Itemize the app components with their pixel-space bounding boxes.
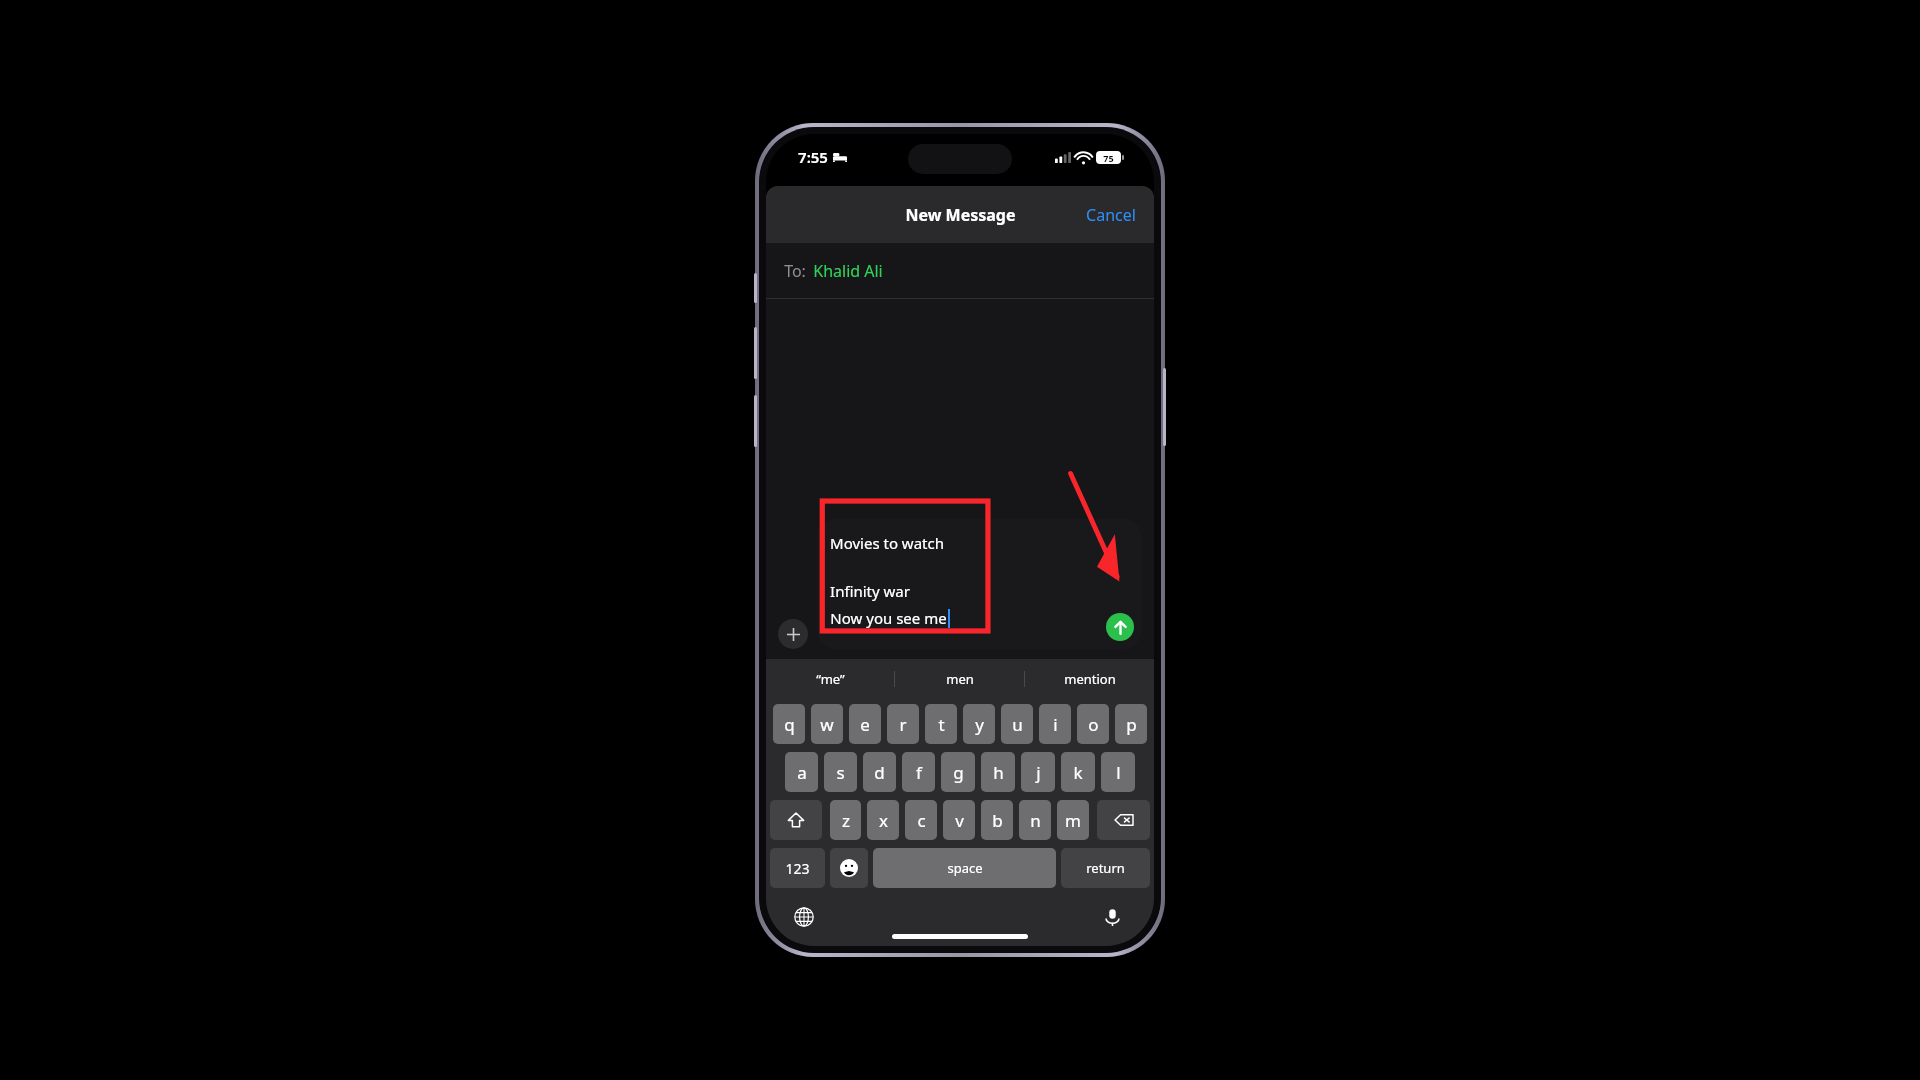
button[interactable]: mention [1025,659,1154,699]
button[interactable]: Dictate [1096,901,1128,933]
staticText: s [836,761,845,784]
staticText: “me” [816,670,845,688]
button[interactable]: u [1001,704,1033,744]
staticText: z [842,809,850,832]
staticText: m [1065,809,1081,832]
staticText: e [860,713,870,736]
button[interactable]: j [1021,752,1055,792]
button[interactable]: “me” [766,659,894,699]
staticText: i [1053,713,1058,736]
staticText: c [917,809,926,832]
button[interactable]: h [981,752,1015,792]
staticText: w [820,713,834,736]
staticText: g [953,761,964,784]
staticText: k [1073,761,1083,784]
staticText: a [797,761,807,784]
button[interactable]: i [1039,704,1071,744]
staticText: Khalid Ali [813,260,883,282]
button[interactable]: return [1061,848,1150,888]
staticText: x [879,809,888,832]
staticText: p [1126,713,1137,736]
button[interactable]: n [1019,800,1051,840]
staticText: 123 [785,859,810,878]
staticText: o [1088,713,1099,736]
staticText: l [1116,761,1121,784]
staticText: f [916,761,922,784]
staticText: b [992,809,1003,832]
button[interactable]: b [981,800,1013,840]
button[interactable]: w [811,704,843,744]
button[interactable]: y [963,704,995,744]
staticText: h [993,761,1004,784]
staticText: y [975,713,984,736]
button[interactable]: Add attachment [778,619,808,649]
staticText: Infinity war [830,581,910,601]
staticText: men [946,670,974,688]
button[interactable]: r [887,704,919,744]
button[interactable]: To: [766,243,1154,298]
button[interactable]: Backspace [1097,800,1150,840]
staticText: Cancel [1086,204,1136,226]
staticText: 75 [1103,152,1114,164]
button[interactable]: e [849,704,881,744]
button[interactable]: Send [1106,613,1134,641]
button[interactable]: space [873,848,1056,888]
staticText: u [1012,713,1023,736]
button[interactable]: g [941,752,975,792]
button[interactable]: l [1101,752,1135,792]
staticText: Now you see me [830,608,947,628]
button[interactable]: o [1077,704,1109,744]
button[interactable]: 123 [770,848,825,888]
button[interactable]: f [902,752,935,792]
button[interactable]: p [1115,704,1147,744]
button[interactable]: Shift [770,800,822,840]
staticText: return [1086,859,1125,877]
staticText: To: [784,260,806,282]
button[interactable]: Change keyboard [788,901,820,933]
button[interactable]: Movies to watch [817,519,1142,649]
staticText: Movies to watch [830,533,944,553]
button[interactable]: a [785,752,818,792]
button[interactable]: men [895,659,1024,699]
staticText: space [947,859,983,877]
button[interactable]: t [925,704,957,744]
button[interactable]: m [1057,800,1089,840]
staticText: New Message [905,204,1016,226]
staticText: 7:55 [798,147,828,167]
staticText: n [1030,809,1041,832]
staticText: q [784,713,795,736]
button[interactable]: Emoji [830,848,868,888]
button[interactable]: v [943,800,975,840]
staticText: j [1036,761,1041,784]
button[interactable]: s [824,752,857,792]
button[interactable]: Cancel [1068,192,1154,238]
staticText: t [938,713,945,736]
staticText: d [874,761,885,784]
staticText: r [899,713,907,736]
button[interactable]: d [863,752,896,792]
staticText: mention [1064,670,1116,688]
button[interactable]: k [1061,752,1095,792]
button[interactable]: z [830,800,861,840]
button[interactable]: q [773,704,805,744]
button[interactable]: c [905,800,937,840]
button[interactable]: x [867,800,899,840]
staticText: v [955,809,964,832]
